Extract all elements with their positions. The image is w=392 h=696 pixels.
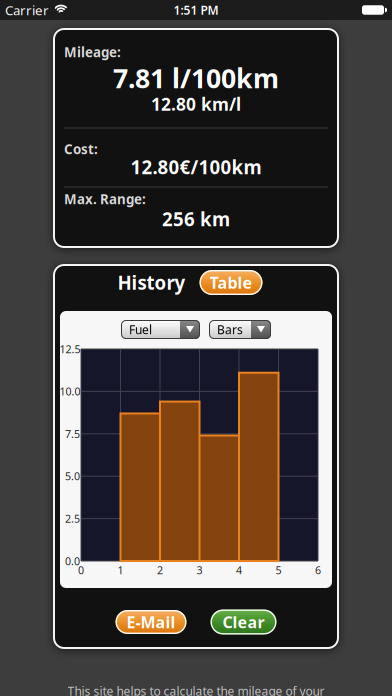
staticText: Bars	[217, 321, 243, 337]
staticText: 1:51 PM	[173, 2, 218, 18]
staticText: 0	[78, 563, 84, 577]
staticText: 4	[236, 563, 242, 577]
staticText: 3	[196, 563, 202, 577]
staticText: This site helps to calculate the mileage…	[67, 683, 324, 696]
button[interactable]: Clear	[210, 609, 276, 634]
staticText: Fuel	[129, 321, 152, 337]
staticText: 5	[275, 563, 281, 577]
staticText: E-Mail	[126, 611, 175, 633]
staticText: 7.5	[65, 427, 80, 441]
staticText: 7.81 l/100km	[113, 60, 279, 96]
staticText: 1	[117, 563, 123, 577]
staticText: Carrier	[5, 1, 49, 19]
staticText: 2.5	[65, 511, 80, 526]
button[interactable]: Bars	[209, 320, 271, 339]
staticText: Table	[209, 272, 252, 293]
staticText: 2	[157, 563, 163, 577]
staticText: 5.0	[65, 469, 80, 483]
staticText: Max. Range:	[64, 190, 146, 208]
staticText: Cost:	[64, 140, 98, 158]
button[interactable]: Fuel	[121, 320, 200, 339]
staticText: Clear	[222, 611, 264, 633]
staticText: 12.5	[59, 342, 80, 356]
button[interactable]: Table	[199, 270, 262, 295]
staticText: 12.80€/100km	[130, 155, 261, 179]
staticText: 0.0	[65, 554, 80, 568]
staticText: 12.80 km/l	[151, 92, 241, 115]
staticText: 256 km	[162, 207, 230, 231]
staticText: History	[117, 270, 185, 295]
button[interactable]: E-Mail	[115, 610, 186, 634]
staticText: 10.0	[59, 384, 80, 398]
staticText: Mileage:	[64, 43, 121, 61]
staticText: 6	[315, 563, 321, 577]
